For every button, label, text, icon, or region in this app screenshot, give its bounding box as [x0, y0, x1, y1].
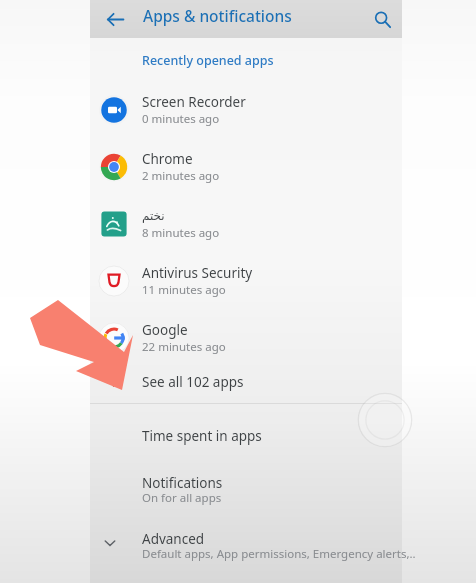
- staticText: Time spent in apps: [142, 427, 262, 445]
- staticText: Chrome: [142, 150, 193, 168]
- button[interactable]: Chrome: [90, 139, 402, 196]
- button[interactable]: See all 102 apps: [90, 365, 402, 401]
- button[interactable]: Notifications: [90, 462, 402, 510]
- staticText: See all 102 apps: [142, 373, 244, 391]
- button[interactable]: Google: [90, 310, 402, 367]
- button[interactable]: Time spent in apps: [90, 415, 402, 459]
- button[interactable]: Antivirus Security: [90, 253, 402, 310]
- staticText: 11 minutes ago: [142, 282, 226, 298]
- staticText: 22 minutes ago: [142, 339, 226, 355]
- staticText: Advanced: [142, 530, 205, 548]
- button[interactable]: نختم: [90, 196, 402, 253]
- staticText: 0 minutes ago: [142, 111, 220, 127]
- button[interactable]: Search: [365, 2, 399, 36]
- staticText: Antivirus Security: [142, 264, 253, 282]
- button[interactable]: Advanced: [90, 518, 402, 566]
- button[interactable]: Back: [97, 1, 133, 37]
- staticText: نختم: [142, 209, 165, 223]
- staticText: 2 minutes ago: [142, 168, 220, 184]
- staticText: Google: [142, 321, 188, 339]
- staticText: Notifications: [142, 474, 223, 492]
- staticText: Apps & notifications: [143, 5, 292, 26]
- staticText: Screen Recorder: [142, 93, 246, 111]
- staticText: Default apps, App permissions, Emergency…: [142, 546, 416, 562]
- staticText: 8 minutes ago: [142, 225, 220, 241]
- staticText: On for all apps: [142, 490, 222, 506]
- staticText: Recently opened apps: [142, 52, 274, 69]
- button[interactable]: Screen Recorder: [90, 82, 402, 139]
